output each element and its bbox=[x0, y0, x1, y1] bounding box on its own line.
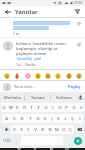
staticText: J bbox=[51, 116, 53, 122]
button[interactable]: Recent apps bbox=[43, 148, 59, 150]
button[interactable]: Like bbox=[75, 20, 82, 27]
button[interactable]: Shift bbox=[1, 125, 11, 134]
staticText: 1sa bbox=[16, 63, 22, 67]
button[interactable]: Like comment bbox=[75, 41, 82, 48]
staticText: A bbox=[5, 116, 8, 122]
button[interactable]: B bbox=[39, 125, 46, 134]
staticText: X bbox=[20, 127, 23, 133]
button[interactable]: Emoji 2 bbox=[24, 72, 31, 79]
button[interactable]: 3 sa bbox=[0, 18, 85, 37]
button[interactable]: C bbox=[25, 125, 32, 134]
button[interactable]: ?123 bbox=[1, 136, 13, 145]
button[interactable]: Send bbox=[74, 137, 82, 145]
button[interactable]: Q bbox=[1, 103, 7, 112]
staticText: B bbox=[41, 127, 44, 133]
button[interactable]: J bbox=[48, 114, 55, 123]
button[interactable]: Voice input bbox=[76, 92, 85, 102]
staticText: L bbox=[64, 116, 67, 122]
button[interactable]: Z bbox=[11, 125, 18, 134]
staticText: Y bbox=[37, 105, 40, 111]
button[interactable]: . bbox=[63, 136, 71, 145]
staticText: Tamam bbox=[31, 95, 45, 100]
button[interactable]: Back bbox=[3, 7, 12, 16]
button[interactable]: K bbox=[55, 114, 62, 123]
staticText: İ bbox=[79, 116, 81, 122]
button[interactable]: T bbox=[28, 103, 35, 112]
staticText: , bbox=[16, 138, 18, 143]
button[interactable]: Back bbox=[11, 148, 27, 150]
button[interactable]: İ bbox=[76, 114, 83, 123]
staticText: O bbox=[58, 105, 62, 111]
button[interactable]: R bbox=[21, 103, 28, 112]
button[interactable]: P bbox=[63, 103, 70, 112]
button[interactable]: Merhaba bbox=[0, 92, 24, 102]
button[interactable]: Ü bbox=[77, 103, 84, 112]
button[interactable]: Hide keyboard bbox=[59, 148, 75, 150]
staticText: E bbox=[16, 105, 19, 111]
staticText: Q bbox=[2, 105, 6, 111]
button[interactable]: Emoji 7 bbox=[75, 72, 82, 79]
button[interactable]: Backspace bbox=[74, 125, 84, 134]
button[interactable]: F bbox=[26, 114, 34, 123]
button[interactable]: O bbox=[56, 103, 63, 112]
staticText: Güzellik çok! bbox=[16, 56, 42, 61]
button[interactable]: L bbox=[62, 114, 69, 123]
staticText: K bbox=[57, 116, 60, 122]
staticText: 20:04 bbox=[74, 1, 83, 5]
staticText: G bbox=[36, 116, 40, 122]
button[interactable]: Ş bbox=[69, 114, 76, 123]
button[interactable]: , bbox=[13, 136, 21, 145]
button[interactable]: Emoji 5 bbox=[54, 72, 61, 79]
staticText: S bbox=[13, 116, 16, 122]
staticText: I bbox=[52, 105, 54, 111]
button[interactable]: Emoji 3 bbox=[34, 72, 41, 79]
staticText: U bbox=[44, 105, 48, 111]
button[interactable]: Emoji 6 bbox=[65, 72, 72, 79]
staticText: ?123 bbox=[3, 138, 11, 143]
staticText: D bbox=[20, 116, 24, 122]
button[interactable]: Emoji 1 bbox=[13, 72, 20, 79]
button[interactable]: Ğ bbox=[70, 103, 77, 112]
staticText: Ğ bbox=[72, 105, 76, 111]
staticText: P bbox=[65, 105, 68, 111]
staticText: Yanıt ekle… bbox=[14, 84, 36, 89]
button[interactable]: Paylaş bbox=[67, 84, 82, 89]
staticText: V bbox=[34, 127, 37, 133]
button[interactable]: S bbox=[10, 114, 18, 123]
staticText: Ç bbox=[69, 127, 72, 133]
button[interactable]: Tamam bbox=[25, 92, 50, 102]
button[interactable]: Yanıt ekle… bbox=[14, 84, 67, 89]
button[interactable]: H bbox=[41, 114, 48, 123]
staticText: Z bbox=[13, 127, 16, 133]
button[interactable]: M bbox=[53, 125, 60, 134]
staticText: M bbox=[55, 127, 59, 133]
staticText: H bbox=[43, 116, 47, 122]
button[interactable]: G bbox=[34, 114, 41, 123]
button[interactable]: kullanıcı Sanatkârlık ürünü başlamıştır,… bbox=[0, 38, 85, 69]
button[interactable]: Home bbox=[27, 148, 43, 150]
staticText: kullanıcı Sanatkârlık ürünü başlamıştır,… bbox=[16, 41, 75, 56]
button[interactable]: U bbox=[42, 103, 49, 112]
button[interactable]: N bbox=[46, 125, 53, 134]
button[interactable]: V bbox=[32, 125, 39, 134]
staticText: Yanıtlar bbox=[15, 8, 38, 16]
button[interactable]: A bbox=[2, 114, 10, 123]
button[interactable]: Yanıtla bbox=[25, 63, 36, 67]
staticText: F bbox=[29, 116, 32, 122]
staticText: 3 sa bbox=[13, 32, 19, 36]
staticText: Ö bbox=[62, 127, 66, 133]
button[interactable]: D bbox=[18, 114, 26, 123]
button[interactable]: Ç bbox=[67, 125, 74, 134]
button[interactable]: Kullanıcı bbox=[51, 92, 76, 102]
button[interactable]: Ö bbox=[60, 125, 67, 134]
button[interactable]: E bbox=[14, 103, 21, 112]
button[interactable]: Emoji 4 bbox=[44, 72, 51, 79]
button[interactable]: Emoji 0 bbox=[3, 72, 10, 79]
button[interactable]: X bbox=[18, 125, 25, 134]
staticText: R bbox=[23, 105, 26, 111]
button[interactable]: I bbox=[49, 103, 56, 112]
button[interactable]: Filter bbox=[73, 7, 82, 16]
button[interactable]: W bbox=[7, 103, 14, 112]
button[interactable]: Y bbox=[35, 103, 42, 112]
